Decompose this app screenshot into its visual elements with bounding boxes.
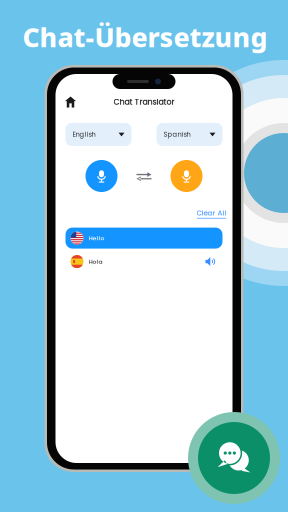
button[interactable]: Spanish bbox=[156, 123, 222, 146]
button[interactable]: Play translation bbox=[203, 255, 217, 269]
button[interactable]: Open chat bbox=[188, 412, 280, 504]
button[interactable]: Home bbox=[60, 92, 80, 112]
staticText: Clear All bbox=[196, 208, 226, 218]
staticText: Chat Translator bbox=[113, 96, 174, 108]
button[interactable]: English bbox=[65, 123, 131, 146]
staticText: Spanish bbox=[163, 130, 190, 139]
staticText: Chat-Übersetzung bbox=[22, 19, 267, 55]
button[interactable]: Clear All bbox=[196, 208, 226, 219]
button[interactable]: Record in English bbox=[85, 160, 117, 192]
staticText: Hola bbox=[88, 257, 102, 266]
staticText: Hello bbox=[88, 234, 104, 242]
staticText: English bbox=[72, 130, 95, 139]
button[interactable]: Record in Spanish bbox=[170, 160, 202, 192]
